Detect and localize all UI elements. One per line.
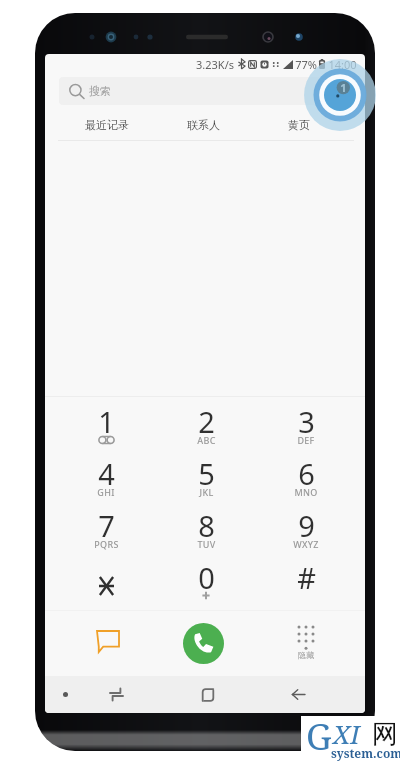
staticText: G bbox=[306, 712, 332, 758]
staticText: 7 bbox=[98, 506, 115, 545]
button[interactable]: 2 bbox=[156, 399, 256, 451]
staticText: 14:00 bbox=[328, 57, 357, 72]
button[interactable]: 搜索 bbox=[59, 77, 351, 105]
staticText: 77% bbox=[295, 57, 317, 72]
staticText: 6 bbox=[298, 454, 315, 493]
staticText: 1 bbox=[340, 80, 347, 95]
staticText: 搜索 bbox=[89, 84, 111, 98]
button[interactable]: 1 bbox=[56, 399, 156, 451]
staticText: 3 bbox=[298, 402, 315, 441]
button[interactable]: 4 bbox=[56, 451, 156, 503]
staticText: 8 bbox=[198, 506, 215, 545]
staticText: TUV bbox=[197, 538, 216, 550]
staticText: 2 bbox=[198, 402, 215, 441]
staticText: 5 bbox=[198, 454, 215, 493]
button[interactable]: 7 bbox=[56, 503, 156, 555]
button[interactable] bbox=[56, 555, 156, 607]
staticText: # bbox=[297, 558, 316, 597]
button[interactable]: Switch apps bbox=[93, 676, 139, 713]
staticText: 4 bbox=[98, 454, 115, 493]
staticText: 最近记录 bbox=[85, 118, 129, 132]
button[interactable]: 8 bbox=[156, 503, 256, 555]
button[interactable]: 最近记录 bbox=[59, 110, 155, 140]
staticText: 9 bbox=[298, 506, 315, 545]
button[interactable]: One handed mode bbox=[53, 676, 77, 713]
staticText: GHI bbox=[97, 486, 115, 498]
staticText: MNO bbox=[294, 486, 318, 498]
button[interactable]: 6 bbox=[256, 451, 356, 503]
staticText: WXYZ bbox=[293, 538, 319, 550]
staticText: 1 bbox=[98, 402, 115, 441]
button[interactable]: 9 bbox=[256, 503, 356, 555]
button[interactable]: Recents bbox=[185, 676, 231, 713]
staticText: 联系人 bbox=[187, 118, 220, 132]
button[interactable]: 3 bbox=[256, 399, 356, 451]
button[interactable]: 0 bbox=[156, 555, 256, 607]
staticText: 3.23K/s bbox=[196, 57, 234, 72]
button[interactable]: 联系人 bbox=[155, 110, 251, 140]
button[interactable]: 5 bbox=[156, 451, 256, 503]
staticText: system.com bbox=[331, 745, 400, 761]
staticText: JKL bbox=[199, 486, 214, 498]
staticText: ABC bbox=[197, 434, 216, 446]
staticText: 0 bbox=[198, 558, 215, 597]
staticText: PQRS bbox=[94, 538, 119, 550]
button[interactable]: 黄页 bbox=[251, 110, 347, 140]
button[interactable]: Hide keypad bbox=[283, 620, 328, 665]
button[interactable]: Call bbox=[183, 623, 224, 664]
button[interactable]: # bbox=[256, 555, 356, 607]
staticText: XI bbox=[333, 716, 360, 751]
button[interactable]: Send message bbox=[85, 619, 130, 664]
staticText: 黄页 bbox=[288, 118, 310, 132]
staticText: DEF bbox=[297, 434, 315, 446]
staticText: 网 bbox=[372, 718, 398, 751]
button[interactable]: Back bbox=[275, 676, 321, 713]
staticText: 隐藏 bbox=[298, 650, 314, 660]
